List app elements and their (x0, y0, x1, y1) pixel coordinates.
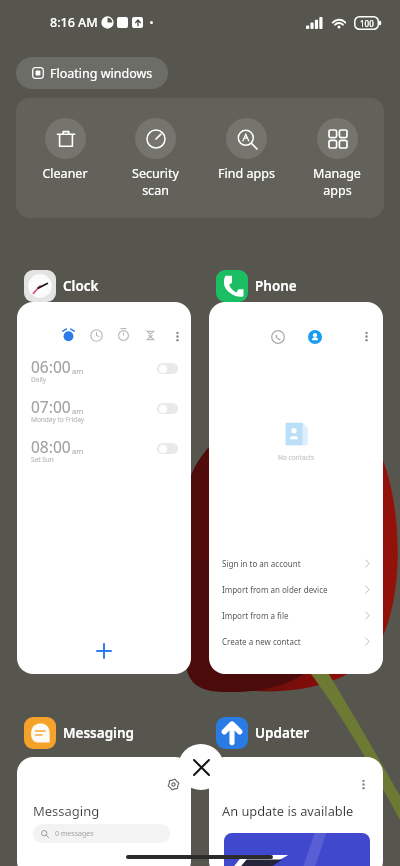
staticText: Create a new contact (222, 636, 301, 647)
staticText: Monday to Friday (31, 415, 85, 424)
button[interactable]: Messaging (24, 717, 134, 749)
button[interactable]: Sign in to an account (209, 550, 383, 576)
button[interactable]: 08:00 (17, 436, 191, 476)
staticText: 8:16 AM (50, 14, 98, 31)
staticText: Import from a file (222, 610, 289, 621)
button[interactable]: Cleaner (20, 98, 110, 218)
button[interactable]: No contacts (209, 302, 383, 674)
button[interactable] (157, 443, 178, 454)
staticText: scan (142, 182, 169, 199)
staticText: 07:00 (31, 396, 71, 417)
staticText: Messaging (33, 802, 100, 820)
button[interactable]: Create a new contact (209, 628, 383, 654)
staticText: Security (132, 165, 179, 182)
staticText: Messaging (63, 724, 134, 742)
staticText: Find apps (218, 165, 275, 182)
button[interactable]: Manage (292, 98, 382, 218)
staticText: am (72, 366, 84, 376)
staticText: An update is available (222, 802, 354, 819)
staticText: Clock (63, 277, 99, 295)
button[interactable]: Find apps (201, 98, 291, 218)
staticText: 06:00 (31, 356, 71, 377)
button[interactable]: Floating windows (16, 57, 168, 89)
staticText: Floating windows (50, 65, 153, 82)
staticText: Import from an older device (222, 584, 328, 595)
button[interactable]: 06:00 (17, 356, 191, 396)
button[interactable]: An update is available (209, 757, 383, 866)
staticText: Sat Sun (31, 455, 54, 464)
staticText: Phone (255, 277, 297, 295)
staticText: 100 (360, 18, 374, 29)
staticText: Sign in to an account (222, 558, 301, 569)
button[interactable]: 0 messages (33, 824, 170, 843)
staticText: No contacts (278, 453, 315, 462)
staticText: am (72, 446, 84, 456)
button[interactable]: 06:00 (17, 302, 191, 674)
button[interactable]: Import from a file (209, 602, 383, 628)
button[interactable]: Messaging (17, 757, 191, 866)
staticText: Updater (255, 724, 310, 742)
staticText: Cleaner (42, 165, 88, 182)
staticText: am (72, 406, 84, 416)
staticText: 0 messages (55, 829, 94, 839)
button[interactable]: Phone (216, 270, 297, 302)
button[interactable]: Clock (24, 270, 99, 302)
button[interactable] (157, 363, 178, 374)
button[interactable] (157, 403, 178, 414)
button[interactable]: Updater (216, 717, 310, 749)
staticText: apps (323, 182, 352, 199)
staticText: 08:00 (31, 436, 71, 457)
button[interactable]: Close all (178, 744, 224, 790)
staticText: Daily (31, 375, 47, 384)
button[interactable]: Security (110, 98, 200, 218)
button[interactable]: 07:00 (17, 396, 191, 436)
staticText: Manage (313, 165, 361, 182)
button[interactable]: Import from an older device (209, 576, 383, 602)
